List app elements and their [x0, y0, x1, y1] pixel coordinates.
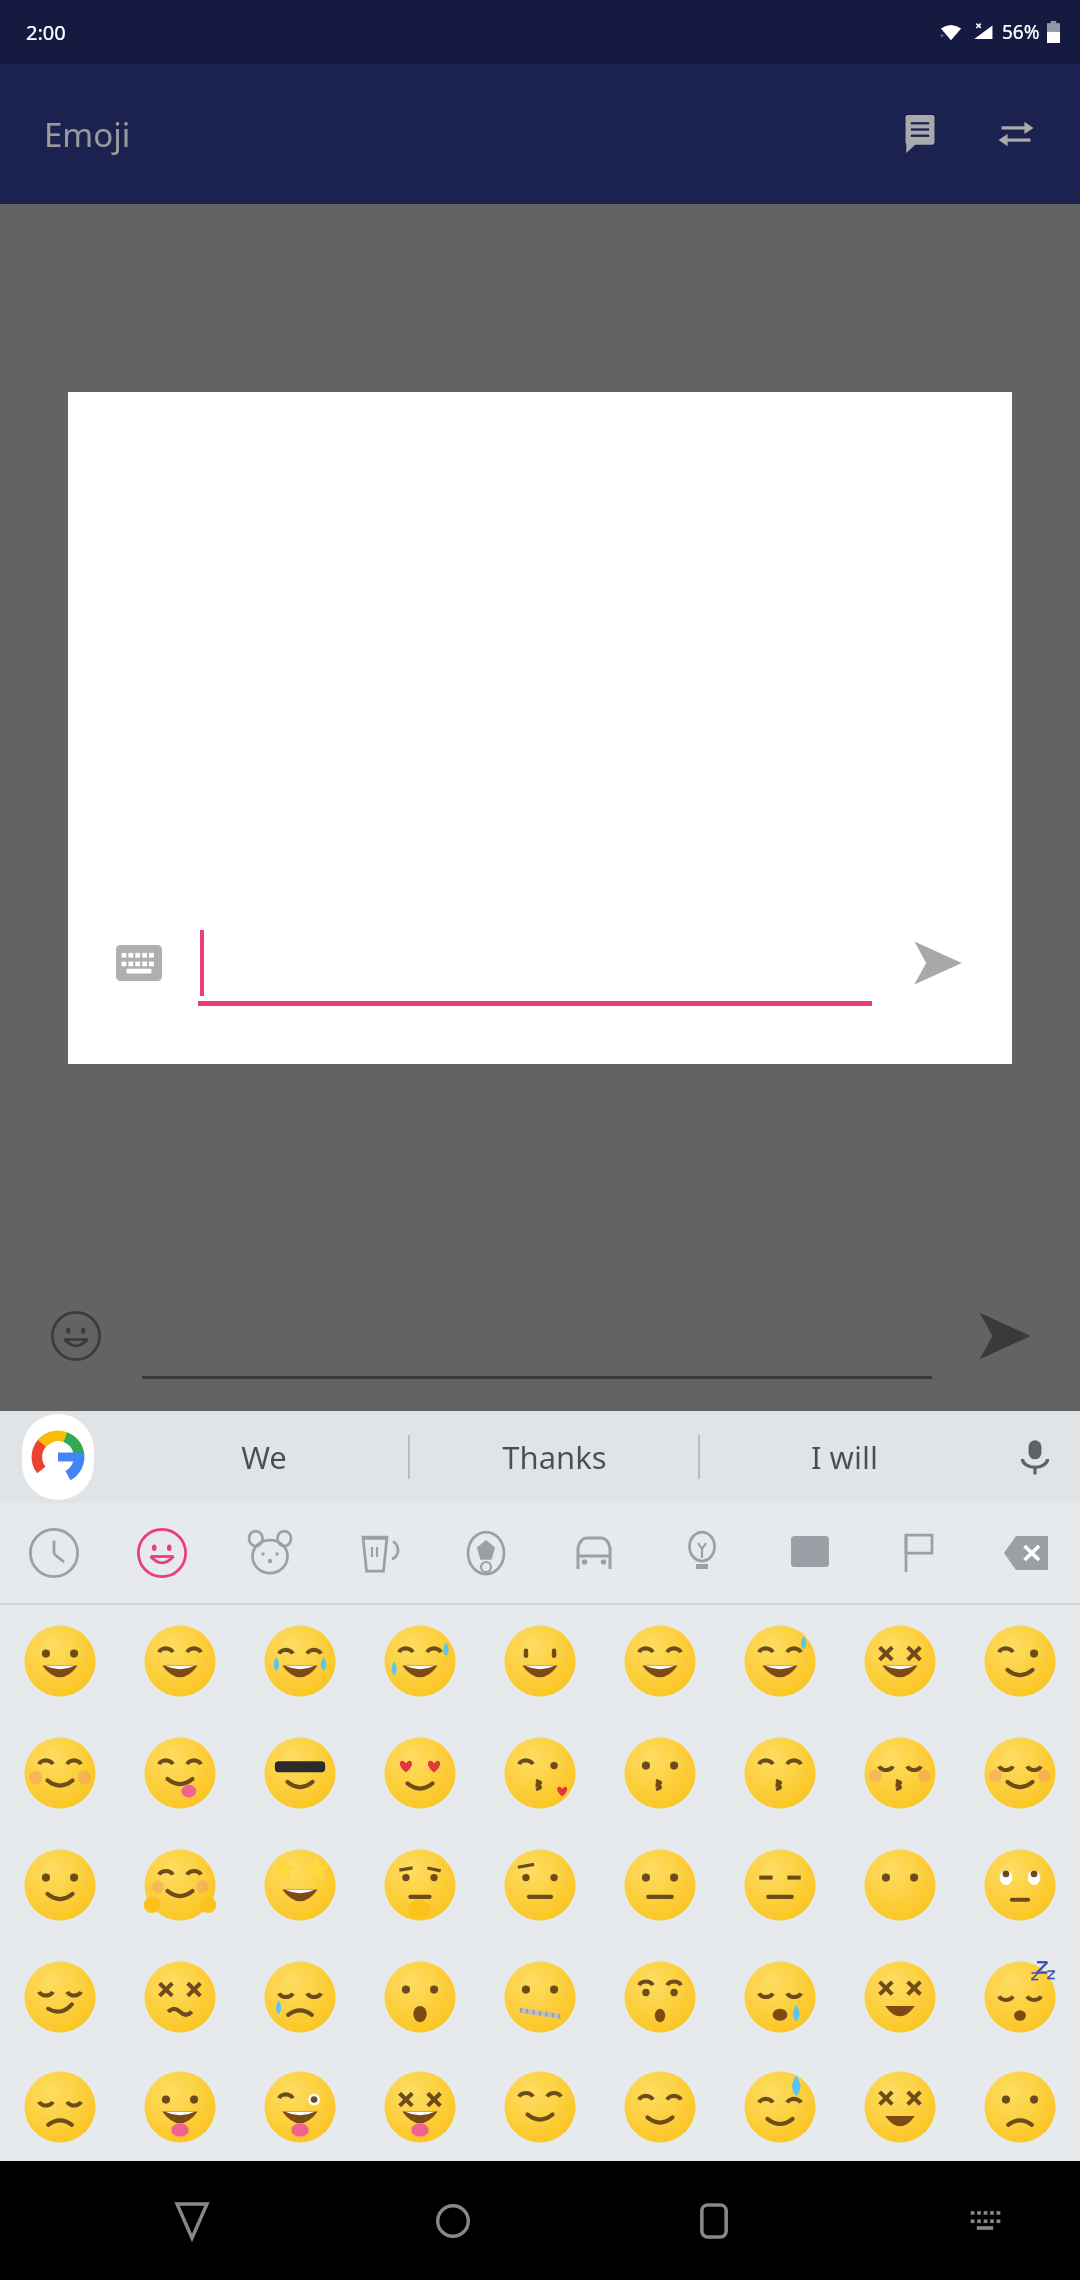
button[interactable]: Recent apps [659, 2166, 769, 2276]
button[interactable]: raisebrow [480, 1829, 600, 1941]
button[interactable]: Thanks [410, 1411, 698, 1503]
staticText: 2:00 [26, 19, 66, 46]
button[interactable]: blush [0, 1717, 120, 1829]
button[interactable]: Google [22, 1414, 94, 1500]
button[interactable]: kiss [600, 1717, 720, 1829]
button[interactable]: think [360, 1829, 480, 1941]
button[interactable]: yum [120, 1717, 240, 1829]
button[interactable]: clock [0, 1503, 108, 1603]
button[interactable]: relieved [960, 1717, 1080, 1829]
button[interactable]: car [540, 1503, 648, 1603]
button[interactable]: smirk [0, 1941, 120, 2053]
button[interactable]: I will [700, 1411, 988, 1503]
button[interactable]: zipper [480, 1941, 600, 2053]
button[interactable]: smiley [108, 1503, 216, 1603]
button[interactable]: oh [360, 1941, 480, 2053]
button[interactable]: Voice input [990, 1412, 1080, 1502]
staticText: Thanks [502, 1436, 607, 1478]
button[interactable]: back [972, 1503, 1080, 1603]
button[interactable]: rofl [360, 1605, 480, 1717]
button[interactable]: Keyboard [104, 928, 174, 998]
button[interactable]: weary2 [840, 2053, 960, 2161]
button[interactable]: star [240, 1829, 360, 1941]
button[interactable]: kissheart [480, 1717, 600, 1829]
button[interactable]: hug [120, 1829, 240, 1941]
button[interactable]: ball [432, 1503, 540, 1603]
button[interactable]: yumface [480, 2053, 600, 2161]
button[interactable]: anguish [840, 1941, 960, 2053]
button[interactable]: squint [840, 1605, 960, 1717]
button[interactable]: Messages [882, 96, 958, 172]
button[interactable]: tongue [120, 2053, 240, 2161]
button[interactable]: We [120, 1411, 408, 1503]
button[interactable]: confounded [120, 1941, 240, 2053]
button[interactable]: Emoji [30, 1290, 122, 1382]
button[interactable]: joy [240, 1605, 360, 1717]
button[interactable]: hushed [600, 1941, 720, 2053]
staticText: 56% [1002, 19, 1040, 45]
button[interactable]: Home [398, 2166, 508, 2276]
button[interactable]: frown [960, 2053, 1080, 2161]
button[interactable]: grinbeam [120, 1605, 240, 1717]
button[interactable]: sleep [960, 1941, 1080, 2053]
button[interactable]: neutral [600, 1829, 720, 1941]
button[interactable]: animal [216, 1503, 324, 1603]
button[interactable]: kisssmile [720, 1717, 840, 1829]
staticText: We [241, 1436, 287, 1478]
button[interactable]: sweatsmile [720, 1605, 840, 1717]
button[interactable]: squinttongue [360, 2053, 480, 2161]
button[interactable]: bulb [648, 1503, 756, 1603]
button[interactable]: relief2 [600, 2053, 720, 2161]
button[interactable]: kissclosed [840, 1717, 960, 1829]
staticText: Emoji [44, 112, 131, 157]
button[interactable]: cup [324, 1503, 432, 1603]
button[interactable]: hearteyes [360, 1717, 480, 1829]
button[interactable]: open [480, 1605, 600, 1717]
button[interactable]: winktongue [240, 2053, 360, 2161]
button[interactable]: wink [960, 1605, 1080, 1717]
button[interactable]: sym [756, 1503, 864, 1603]
button[interactable]: sunglasses [240, 1717, 360, 1829]
button[interactable]: Switch keyboard [935, 2171, 1035, 2271]
button[interactable]: worried [240, 1941, 360, 2053]
button[interactable]: coldsweat [720, 2053, 840, 2161]
button[interactable]: pensive [0, 2053, 120, 2161]
button[interactable]: Send [898, 924, 976, 1002]
button[interactable]: flag [864, 1503, 972, 1603]
button[interactable]: smilebeam [600, 1605, 720, 1717]
button[interactable]: expressionless [720, 1829, 840, 1941]
button[interactable]: slight [0, 1829, 120, 1941]
button[interactable]: roll [960, 1829, 1080, 1941]
button[interactable]: grin [0, 1605, 120, 1717]
button[interactable]: nomouth [840, 1829, 960, 1941]
button[interactable]: sleepy [720, 1941, 840, 2053]
staticText: I will [811, 1436, 878, 1478]
button[interactable]: Send message [958, 1290, 1050, 1382]
button[interactable]: Swap [978, 96, 1054, 172]
button[interactable]: Back [137, 2166, 247, 2276]
